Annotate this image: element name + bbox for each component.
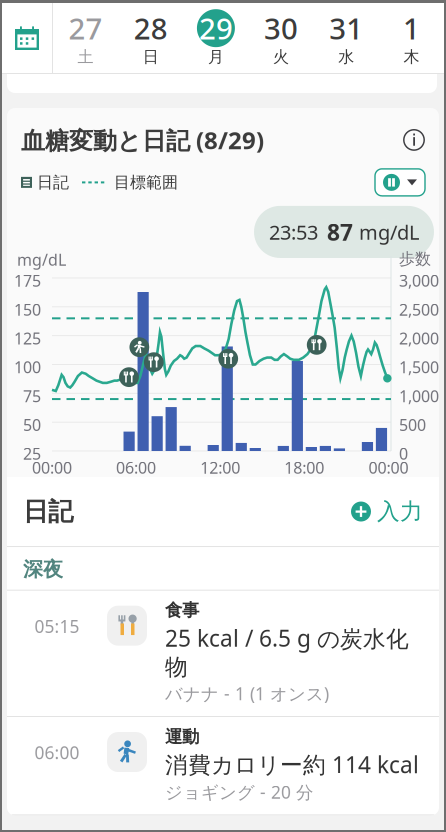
staticText: 18:00 [284, 457, 324, 478]
staticText: 歩数 [399, 249, 431, 269]
button[interactable]: 29 [183, 9, 248, 67]
staticText: 日記 [37, 172, 69, 192]
staticText: バナナ - 1 (1 オンス) [165, 682, 329, 705]
staticText: 12:00 [200, 457, 240, 478]
button[interactable]: 31 [314, 9, 379, 67]
staticText: 125 [14, 328, 41, 349]
button[interactable]: 1 [379, 9, 444, 67]
button[interactable]: 入力 [351, 498, 423, 525]
staticText: 50 [23, 414, 41, 435]
button[interactable]: 単位 [375, 169, 425, 196]
staticText: 05:15 [34, 615, 79, 638]
staticText: 目標範囲 [114, 172, 178, 192]
button[interactable]: 27 [53, 9, 118, 67]
staticText: 00:00 [32, 457, 72, 478]
staticText: 深夜 [23, 557, 63, 582]
staticText: 27 [69, 9, 103, 48]
staticText: 1 [403, 9, 420, 48]
staticText: 3,000 [399, 270, 439, 291]
staticText: 土 [78, 47, 94, 67]
staticText: 1,500 [399, 356, 439, 378]
staticText: 火 [273, 47, 289, 67]
staticText: 血糖変動と日記 (8/29) [21, 124, 264, 156]
staticText: 87 [327, 217, 353, 247]
staticText: 30 [264, 9, 298, 48]
staticText: 0 [399, 443, 408, 464]
staticText: 25 kcal / 6.5 g の炭水化物 [165, 623, 409, 681]
button[interactable]: カレンダー [2, 3, 52, 73]
staticText: 00:00 [368, 457, 408, 478]
staticText: 日記 [23, 496, 73, 527]
staticText: 500 [399, 414, 426, 435]
staticText: 1,000 [399, 385, 439, 406]
staticText: 2,000 [399, 328, 439, 349]
staticText: 消費カロリー約 114 kcal [165, 749, 419, 779]
staticText: 日 [143, 47, 159, 67]
staticText: 月 [208, 47, 224, 67]
staticText: 木 [403, 47, 419, 67]
staticText: 23:53 [269, 219, 318, 245]
button[interactable]: 30 [248, 9, 314, 67]
button[interactable]: 情報 [403, 129, 425, 151]
staticText: 06:00 [34, 741, 79, 764]
staticText: 25 [23, 443, 41, 464]
staticText: 31 [329, 9, 363, 48]
button[interactable]: 28 [118, 9, 183, 67]
staticText: 2,500 [399, 299, 439, 320]
staticText: mg/dL [17, 249, 66, 270]
button[interactable]: 05:15 [7, 591, 439, 716]
staticText: 29 [199, 9, 233, 48]
staticText: 150 [14, 299, 41, 320]
staticText: 水 [338, 47, 354, 67]
staticText: 入力 [377, 498, 423, 525]
staticText: 運動 [165, 726, 199, 747]
staticText: ジョギング - 20 分 [165, 780, 313, 803]
staticText: 75 [23, 385, 41, 406]
staticText: 175 [14, 270, 41, 291]
staticText: 06:00 [116, 457, 156, 478]
button[interactable]: 06:00 [7, 717, 439, 814]
staticText: 100 [14, 356, 41, 378]
staticText: mg/dL [359, 219, 419, 245]
staticText: 食事 [165, 600, 199, 621]
staticText: 28 [134, 9, 168, 48]
